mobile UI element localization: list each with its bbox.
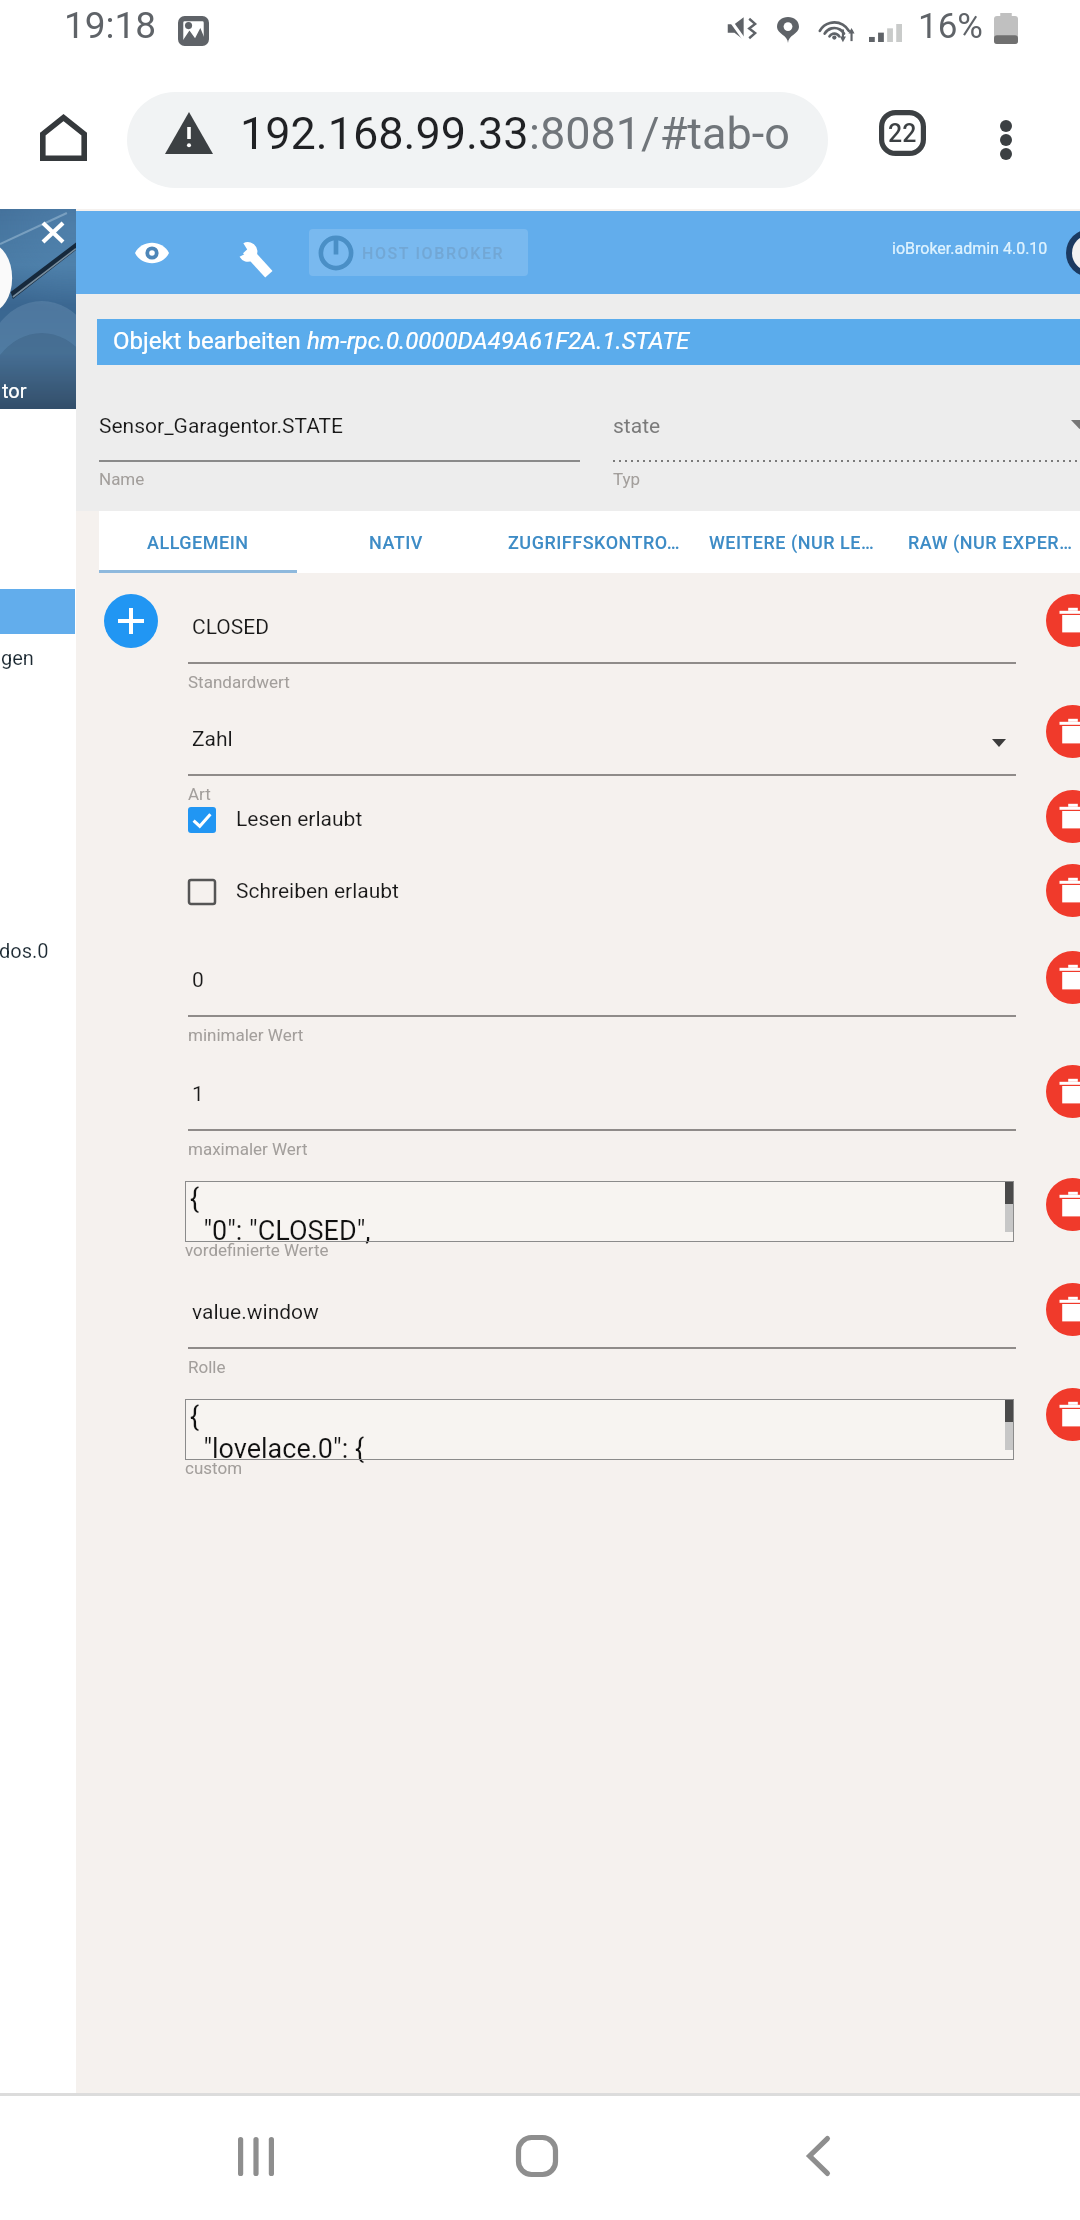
staticText: vordefinierte Werte [185,1240,329,1260]
staticText: :8081/#tab-o [529,107,790,160]
staticText: state [613,414,661,439]
staticText: Sensor_Garagentor.STATE [99,414,344,439]
button[interactable]: 192.168.99.33 [127,92,828,188]
staticText: { [190,1401,200,1433]
button[interactable]: Delete [1046,594,1080,647]
button[interactable]: Back [758,2096,878,2216]
button[interactable]: Delete [1046,1065,1080,1118]
button[interactable]: Delete [1046,864,1080,917]
button[interactable]: Delete [1046,1388,1080,1441]
staticText: 192.168.99.33 [240,107,529,160]
button[interactable]: { [185,1399,1014,1460]
button[interactable]: tor [0,209,76,409]
staticText: gen [1,646,34,669]
staticText: Standardwert [188,672,290,692]
button[interactable]: NATIV [297,511,495,573]
staticText: 16% [918,6,983,47]
button[interactable]: Recents [196,2096,316,2216]
staticText: Zahl [192,727,233,752]
button[interactable]: Home [20,94,106,180]
staticText: HOST IOBROKER [362,244,505,263]
staticText: "0": "CLOSED", [190,1215,371,1247]
button[interactable]: Delete [1046,1283,1080,1336]
button[interactable]: Add [104,594,158,648]
staticText: maximaler Wert [188,1139,308,1159]
staticText: value.window [192,1300,319,1325]
button[interactable]: Expert mode [124,233,180,273]
staticText: 19:18 [64,4,157,47]
staticText: "lovelace.0": { [190,1433,365,1465]
button[interactable]: ALLGEMEIN [99,511,297,573]
button[interactable]: WEITERE (NUR LE… [693,511,891,573]
staticText: { [190,1183,200,1215]
button[interactable]: Tabs: 22 [864,98,940,168]
button[interactable]: Schreiben erlaubt [188,878,399,905]
button[interactable]: HOST IOBROKER [309,229,528,276]
staticText: RAW (NUR EXPER… [908,532,1073,553]
staticText: Lesen erlaubt [236,807,363,832]
staticText: ioBroker.admin 4.0.10 [892,239,1048,258]
other: Close drawer [43,223,63,242]
staticText: 22 [888,119,917,148]
staticText: 1 [192,1082,204,1107]
staticText: Schreiben erlaubt [236,879,399,904]
button[interactable]: ZUGRIFFSKONTRO… [495,511,693,573]
staticText: NATIV [369,532,423,553]
staticText: ZUGRIFFSKONTRO… [508,532,681,553]
button[interactable]: Delete [1046,951,1080,1004]
staticText: Typ [613,469,641,489]
staticText: tor [2,379,27,402]
staticText: CLOSED [192,615,269,640]
staticText: ALLGEMEIN [147,532,249,553]
button[interactable]: Delete [1046,705,1080,758]
staticText: WEITERE (NUR LE… [709,532,875,553]
staticText: minimaler Wert [188,1025,304,1045]
staticText: 0 [192,968,204,993]
button[interactable]: { [185,1181,1014,1242]
staticText: dos.0 [0,939,49,962]
button[interactable]: Home [477,2096,597,2216]
button[interactable]: Delete [1046,1178,1080,1231]
button[interactable]: Delete [1046,790,1080,843]
button[interactable]: More options [966,100,1046,180]
staticText: Rolle [188,1357,226,1377]
button[interactable]: Lesen erlaubt [188,806,363,833]
button[interactable]: Settings [226,231,278,283]
staticText: hm-rpc.0.0000DA49A61F2A.1.STATE [307,327,690,355]
staticText: Art [188,784,211,804]
button[interactable]: RAW (NUR EXPER… [891,511,1080,573]
staticText: custom [185,1458,243,1478]
staticText: Name [99,469,145,489]
staticText: Objekt bearbeiten [113,327,307,355]
